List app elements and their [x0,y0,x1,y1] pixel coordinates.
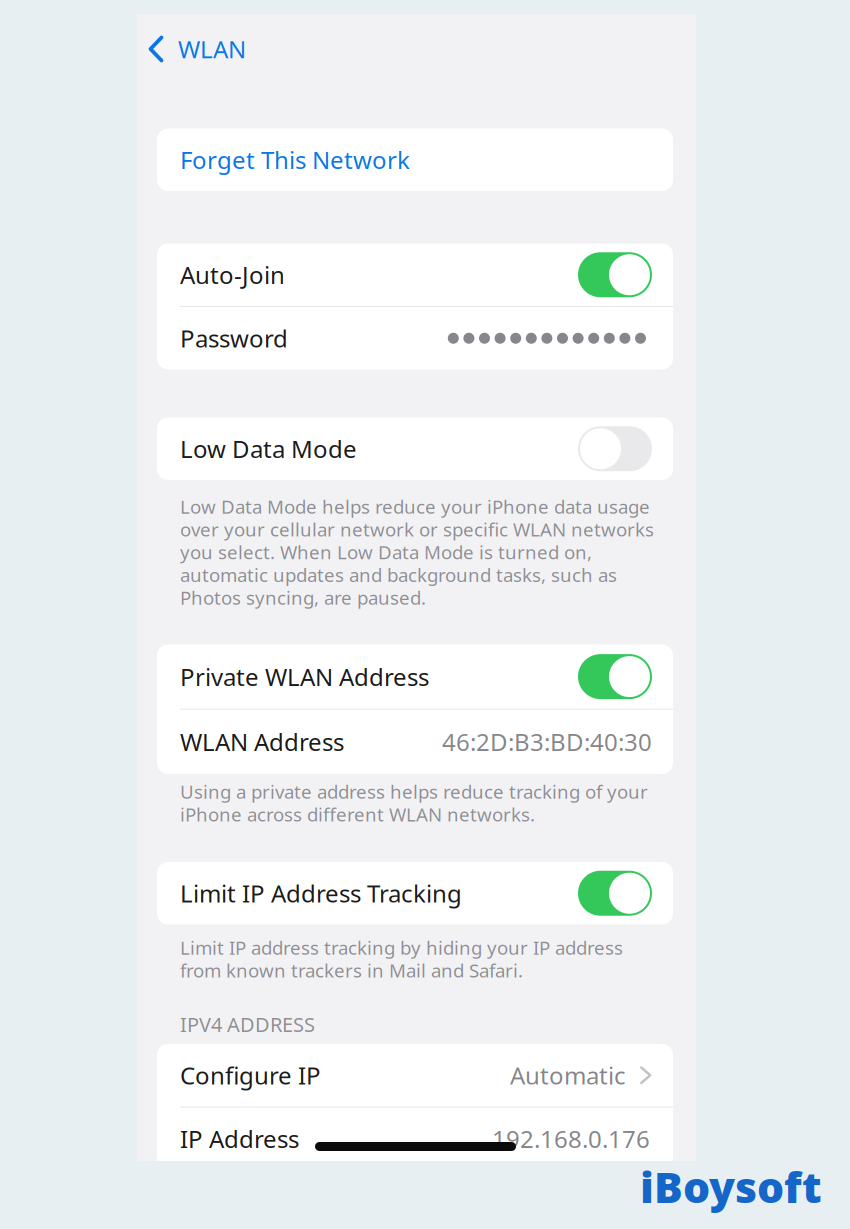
staticText: Forget This Network [180,144,410,176]
button[interactable]: Auto-Join [157,243,673,306]
staticText: 192.168.0.176 [492,1123,650,1155]
staticText: IP Address [180,1123,299,1155]
staticText: Private WLAN Address [180,661,429,693]
staticText: Auto-Join [180,259,285,291]
staticText: Password [180,322,288,354]
staticText: WLAN Address [180,726,344,758]
staticText: Low Data Mode helps reduce your iPhone d… [180,494,654,610]
staticText: WLAN [178,33,246,65]
staticText: Low Data Mode [180,433,357,465]
button[interactable]: Configure IP [157,1044,673,1106]
button[interactable]: Private WLAN Address [157,644,673,709]
staticText: 46:2D:B3:BD:40:30 [442,726,652,758]
staticText: iBoysoft [640,1158,822,1215]
staticText: Limit IP Address Tracking [180,877,462,909]
staticText: Automatic [510,1059,626,1091]
button[interactable]: Low Data Mode [157,417,673,480]
staticText: Using a private address helps reduce tra… [180,779,648,827]
staticText: Limit IP address tracking by hiding your… [180,935,623,983]
staticText: Configure IP [180,1059,321,1091]
staticText: IPV4 ADDRESS [180,1011,315,1038]
button[interactable]: WLAN [137,27,260,71]
button[interactable]: Forget This Network [157,128,673,191]
button[interactable]: Limit IP Address Tracking [157,862,673,924]
